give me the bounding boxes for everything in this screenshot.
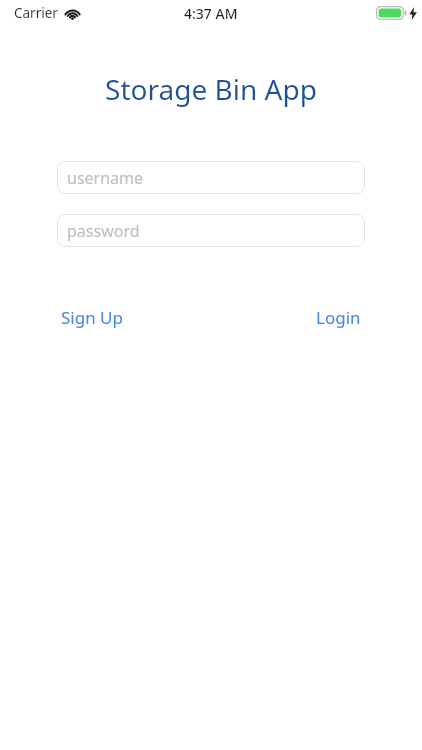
- staticText: 4:37 AM: [184, 4, 238, 23]
- staticText: Sign Up: [61, 306, 123, 329]
- button[interactable]: username: [57, 161, 365, 194]
- staticText: Storage Bin App: [0, 70, 422, 108]
- staticText: password: [67, 220, 140, 242]
- staticText: Carrier: [14, 4, 58, 22]
- button[interactable]: Login: [312, 302, 365, 333]
- staticText: username: [67, 167, 144, 189]
- staticText: Login: [316, 306, 361, 329]
- button[interactable]: Sign Up: [57, 302, 127, 333]
- button[interactable]: password: [57, 214, 365, 247]
